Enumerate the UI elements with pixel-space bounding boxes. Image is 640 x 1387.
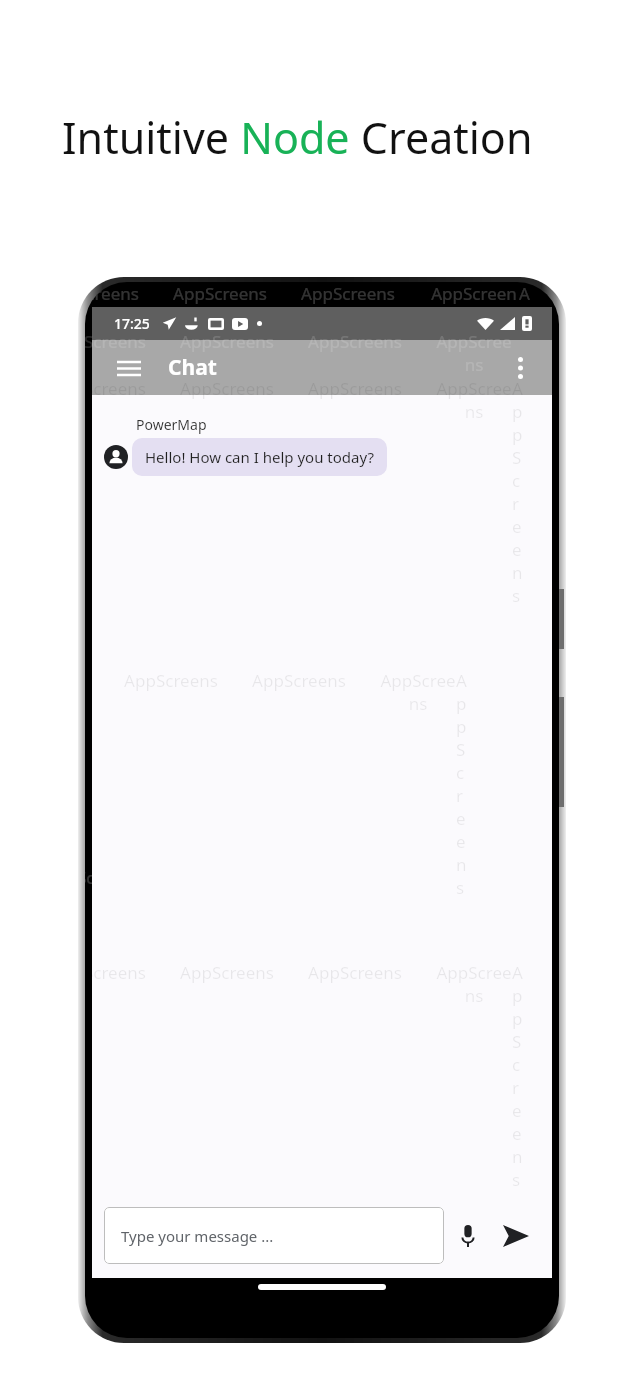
staticText: AppScreens bbox=[180, 330, 274, 353]
staticText: AppScreens bbox=[436, 330, 512, 376]
button[interactable]: Send message bbox=[492, 1212, 540, 1260]
staticText: AppScreens bbox=[124, 669, 218, 692]
button[interactable]: Type your message ... bbox=[104, 1207, 444, 1264]
staticText: AppScreens bbox=[301, 282, 395, 305]
button[interactable]: Open navigation menu bbox=[106, 345, 152, 391]
staticText: AppScreens bbox=[380, 1253, 456, 1260]
staticText: AppScreens bbox=[85, 330, 146, 353]
staticText: AppScreens bbox=[308, 377, 402, 400]
staticText: 17:25 bbox=[114, 314, 150, 333]
button[interactable]: Voice input bbox=[444, 1212, 492, 1260]
staticText: AppScreens bbox=[85, 377, 146, 400]
staticText: Hello! How can I help you today? bbox=[145, 447, 374, 467]
staticText: AppScreens bbox=[380, 669, 456, 715]
staticText: PowerMap bbox=[136, 415, 207, 434]
staticText: AppScreens bbox=[85, 866, 139, 889]
staticText: AppScreens bbox=[308, 330, 402, 353]
staticText: AppScreens bbox=[180, 961, 274, 984]
staticText: AppScreens bbox=[436, 961, 512, 1007]
staticText: Intuitive Node Creation bbox=[62, 108, 533, 167]
staticText: AppScreens bbox=[436, 377, 512, 423]
staticText: Type your message ... bbox=[121, 1226, 274, 1246]
staticText: AppScreens bbox=[85, 282, 139, 305]
staticText: AppScreens bbox=[429, 282, 519, 328]
staticText: Chat bbox=[168, 353, 217, 382]
staticText: AppScreens bbox=[173, 282, 267, 305]
button[interactable]: Hello! How can I help you today? bbox=[132, 438, 387, 476]
staticText: AppScreens bbox=[308, 961, 402, 984]
button[interactable]: More options bbox=[498, 346, 542, 390]
staticText: AppScreens bbox=[85, 961, 146, 984]
staticText: AppScreens bbox=[252, 669, 346, 692]
staticText: AppScreens bbox=[180, 377, 274, 400]
